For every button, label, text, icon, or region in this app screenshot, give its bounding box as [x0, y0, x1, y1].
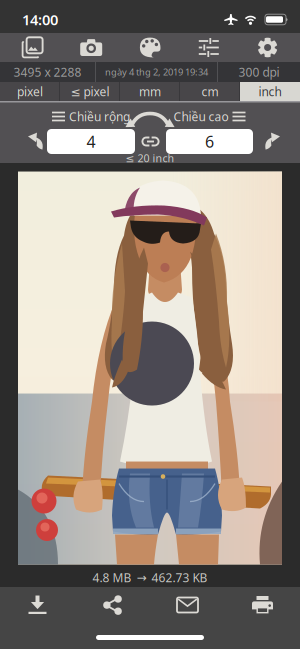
button[interactable]: Swap width and height	[125, 110, 175, 127]
button[interactable]: Chiều rộng	[47, 108, 135, 124]
button[interactable]: Photo Library	[3, 36, 62, 59]
button[interactable]: Effects	[121, 37, 179, 58]
button[interactable]: Width value	[47, 129, 135, 154]
button[interactable]: Adjustments	[179, 38, 238, 57]
staticText: 6	[205, 131, 214, 152]
staticText: Chiều rộng	[69, 108, 130, 124]
button[interactable]: pixel	[0, 82, 60, 101]
staticText: ≤ 20 inch	[125, 151, 174, 165]
staticText: Chiều cao	[173, 108, 228, 124]
staticText: 3495 x 2288	[13, 64, 81, 80]
button[interactable]: cm	[180, 82, 240, 101]
button[interactable]: Lock aspect ratio	[135, 136, 166, 146]
staticText: ngày 4 thg 2, 2019 19:34	[105, 66, 208, 78]
button[interactable]: Save	[0, 595, 75, 614]
button[interactable]: Camera	[62, 38, 121, 56]
staticText: 14:00	[22, 10, 58, 29]
button[interactable]: Print	[225, 596, 300, 614]
staticText: 4	[86, 131, 95, 152]
button[interactable]: Redo	[253, 132, 300, 151]
button[interactable]: ≤ pixel	[60, 82, 120, 101]
staticText: mm	[139, 83, 161, 99]
button[interactable]: Share	[75, 595, 150, 614]
button[interactable]: inch	[240, 82, 300, 101]
staticText: inch	[258, 83, 281, 99]
button[interactable]: Settings	[238, 37, 297, 58]
button[interactable]: mm	[120, 82, 180, 101]
staticText: ≤ pixel	[70, 83, 109, 99]
button[interactable]: Height value	[166, 129, 253, 154]
staticText: 4.8 MB	[92, 569, 131, 585]
staticText: cm	[201, 83, 218, 99]
staticText: 300 dpi	[238, 64, 279, 80]
staticText: pixel	[17, 83, 43, 99]
button[interactable]: Email	[150, 597, 225, 612]
button[interactable]: Undo	[0, 132, 47, 151]
button[interactable]: Chiều cao	[166, 108, 253, 124]
staticText: →	[136, 571, 146, 584]
staticText: 462.73 KB	[151, 569, 207, 585]
